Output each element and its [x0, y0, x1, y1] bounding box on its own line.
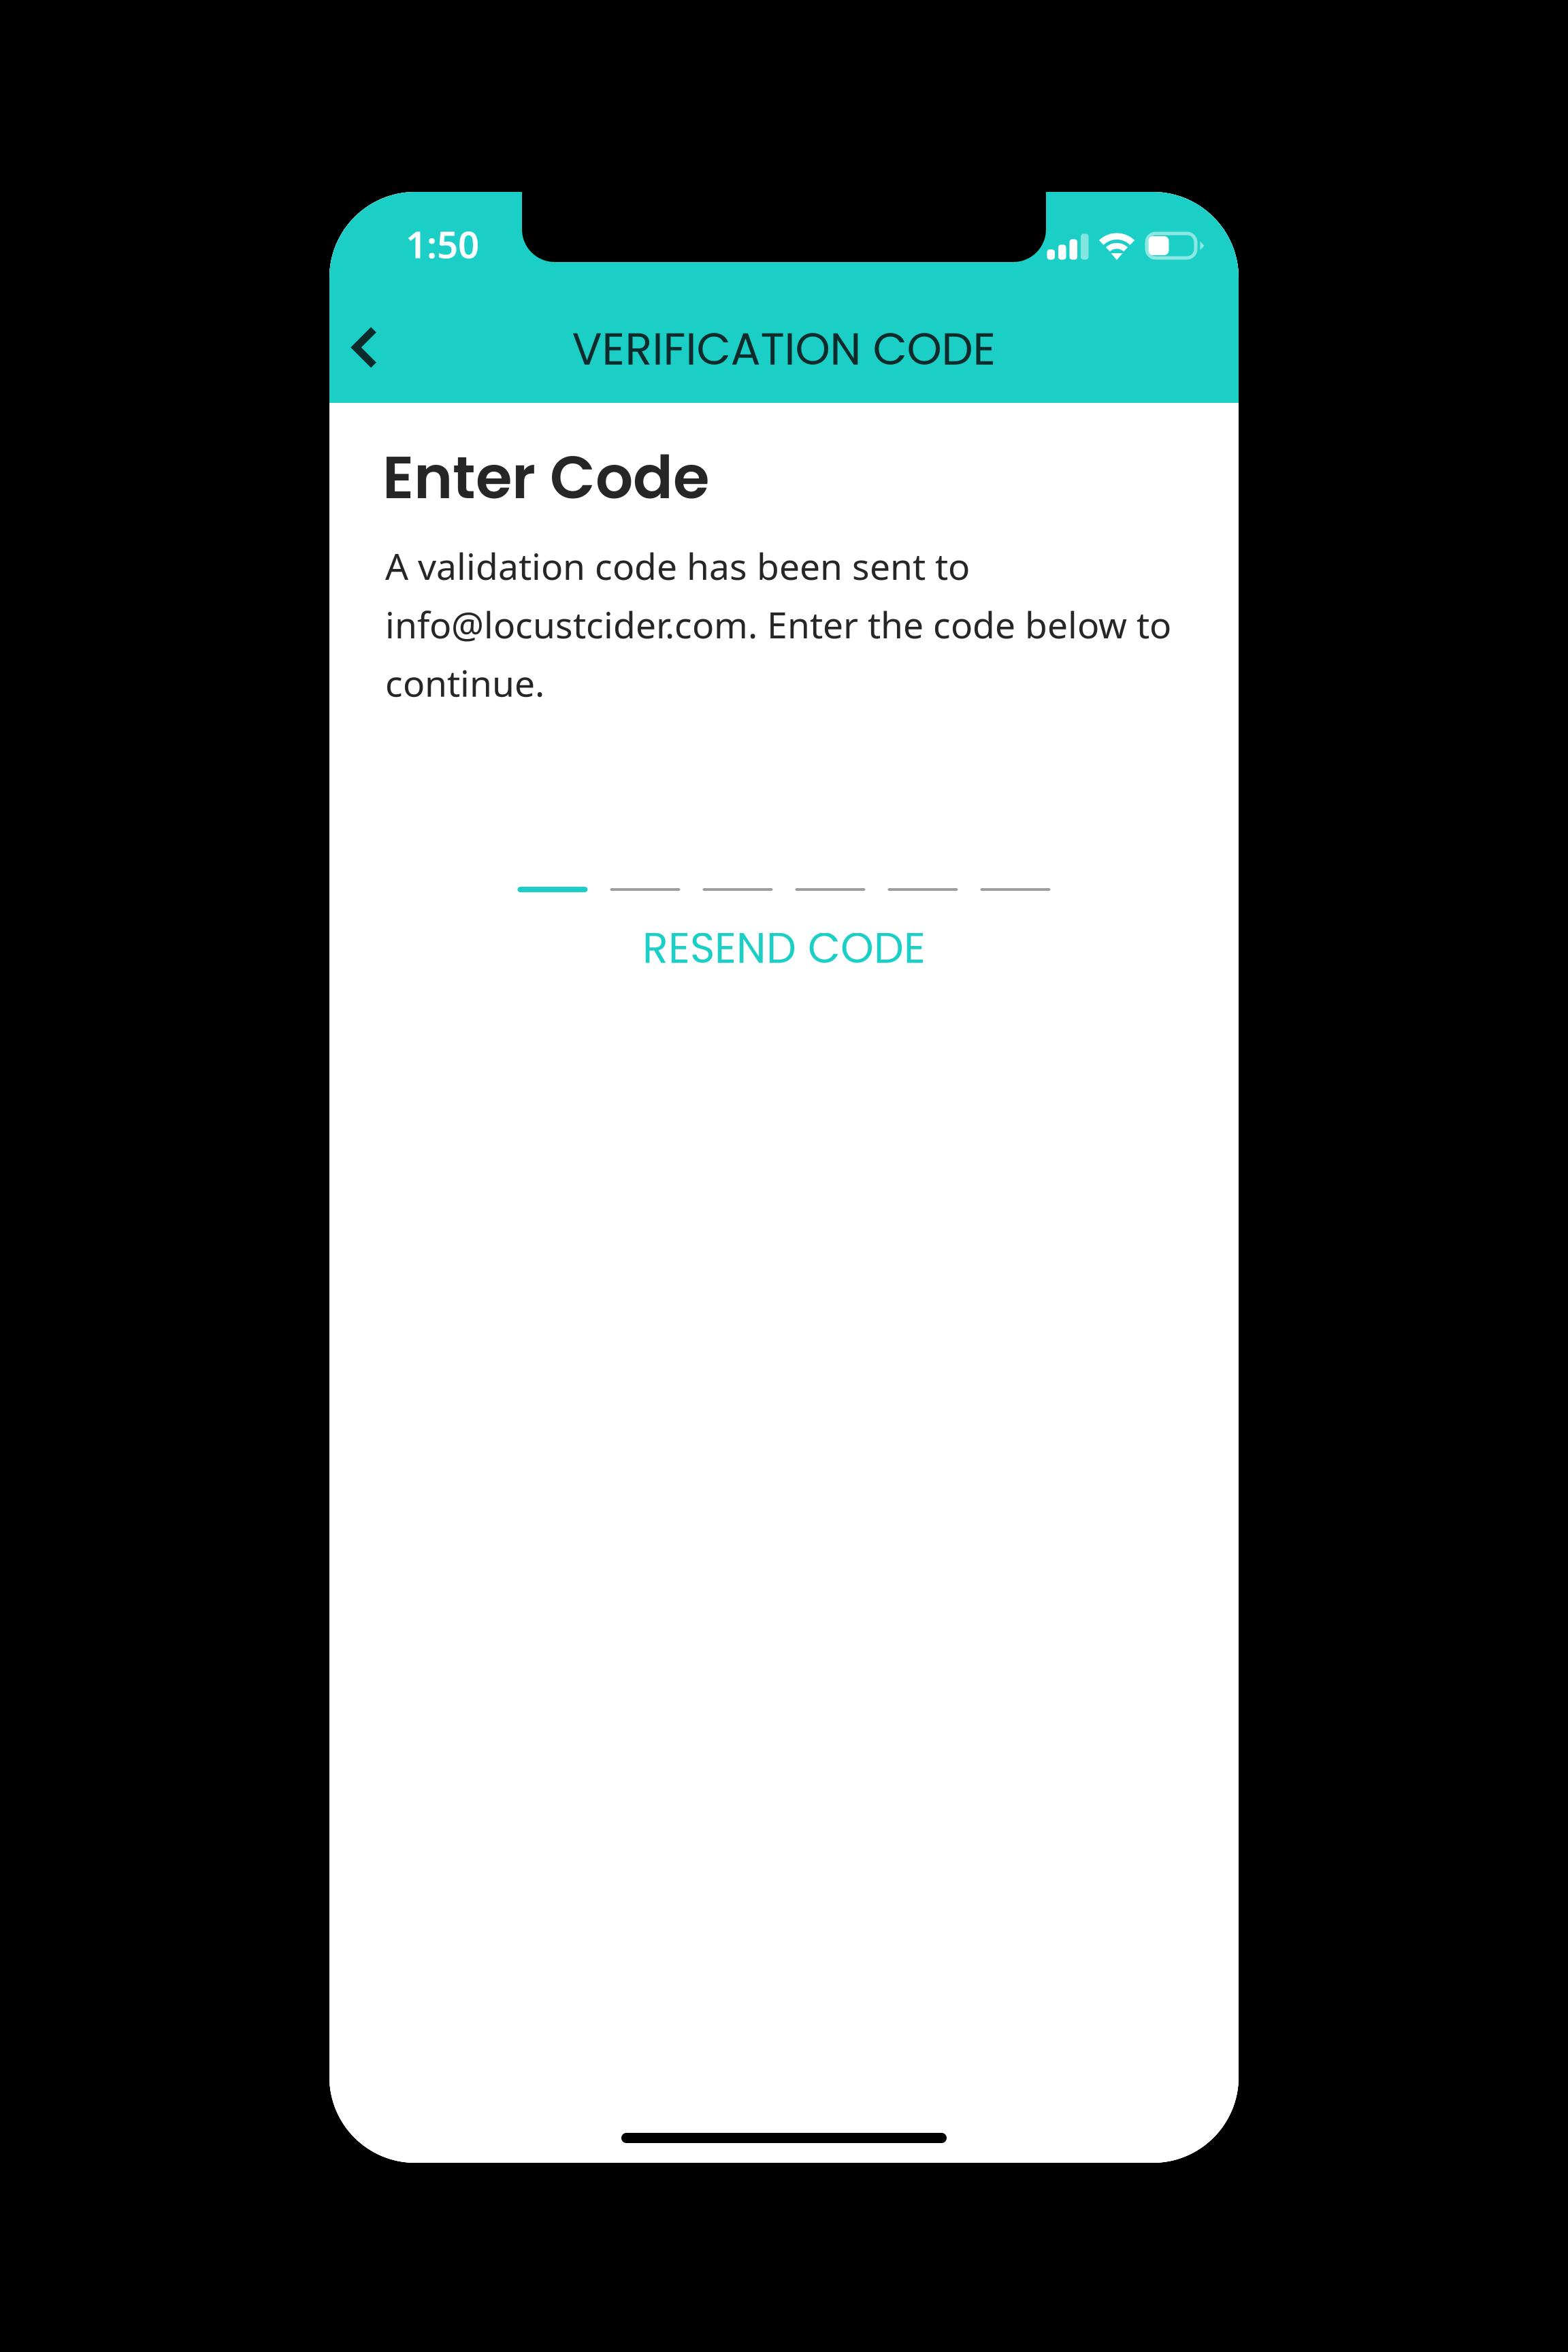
- button[interactable]: Code digit 1: [518, 885, 588, 894]
- staticText: RESEND CODE: [642, 918, 926, 978]
- button[interactable]: Code digit 5: [888, 885, 958, 894]
- staticText: Enter Code: [382, 436, 709, 519]
- button[interactable]: RESEND CODE: [385, 915, 1183, 981]
- staticText: A validation code has been sent to info@…: [385, 542, 1171, 707]
- button[interactable]: Code digit 2: [610, 885, 680, 894]
- button[interactable]: Code digit 3: [703, 885, 773, 894]
- staticText: 1:50: [406, 219, 479, 269]
- button[interactable]: Code digit 6: [980, 885, 1050, 894]
- staticText: VERIFICATION CODE: [572, 318, 996, 380]
- button[interactable]: Code digit 4: [795, 885, 865, 894]
- button[interactable]: Back: [329, 312, 404, 387]
